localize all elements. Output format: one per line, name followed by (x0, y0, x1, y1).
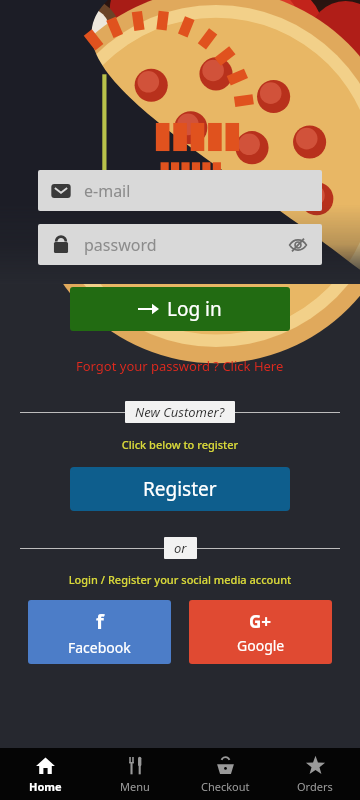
staticText: Checkout (201, 779, 250, 794)
button[interactable]: f (28, 600, 171, 664)
button[interactable]: Menu (90, 748, 180, 800)
staticText: e-mail (84, 180, 131, 202)
button[interactable]: Show password (286, 233, 310, 257)
staticText: Forgot your password ? Click Here (76, 357, 284, 375)
staticText: Home (29, 779, 62, 794)
staticText: New Customer? (135, 403, 225, 421)
staticText: Click below to register (0, 437, 360, 452)
staticText: Orders (297, 779, 333, 794)
staticText: f (96, 608, 104, 635)
button[interactable]: Forgot your password ? Click Here (0, 357, 360, 375)
button[interactable]: Home (0, 748, 90, 800)
button[interactable]: e-mail (38, 170, 322, 211)
staticText: Login / Register your social media accou… (0, 572, 360, 587)
staticText: Facebook (68, 638, 131, 657)
staticText: Menu (120, 779, 150, 794)
staticText: G+ (249, 610, 272, 633)
staticText: or (174, 539, 187, 557)
button[interactable]: Checkout (180, 748, 270, 800)
button[interactable]: Register (70, 467, 290, 511)
button[interactable]: password (38, 224, 322, 265)
staticText: password (84, 234, 157, 256)
button[interactable]: G+ (189, 600, 332, 664)
staticText: Register (143, 476, 217, 502)
button[interactable]: Log in (70, 287, 290, 331)
staticText: Log in (167, 296, 222, 322)
staticText: Google (237, 636, 285, 655)
button[interactable]: Orders (270, 748, 360, 800)
